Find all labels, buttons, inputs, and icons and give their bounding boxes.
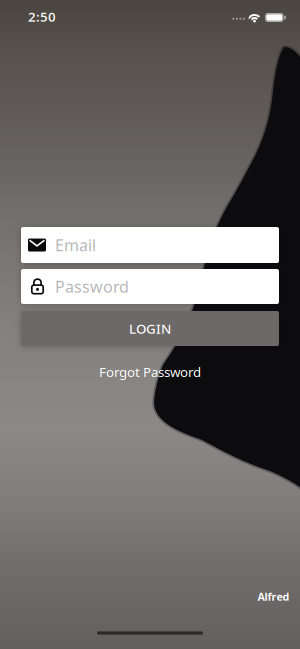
button[interactable]: LOGIN [21,311,279,346]
staticText: Password [55,276,129,297]
staticText: Alfred [257,589,289,604]
staticText: 2:50 [28,8,56,25]
staticText: LOGIN [129,320,171,337]
button[interactable]: Forgot Password [99,363,201,381]
staticText: Email [55,234,96,256]
button[interactable]: Email [21,227,279,263]
button[interactable]: Password [21,269,279,304]
staticText: Forgot Password [99,363,201,381]
